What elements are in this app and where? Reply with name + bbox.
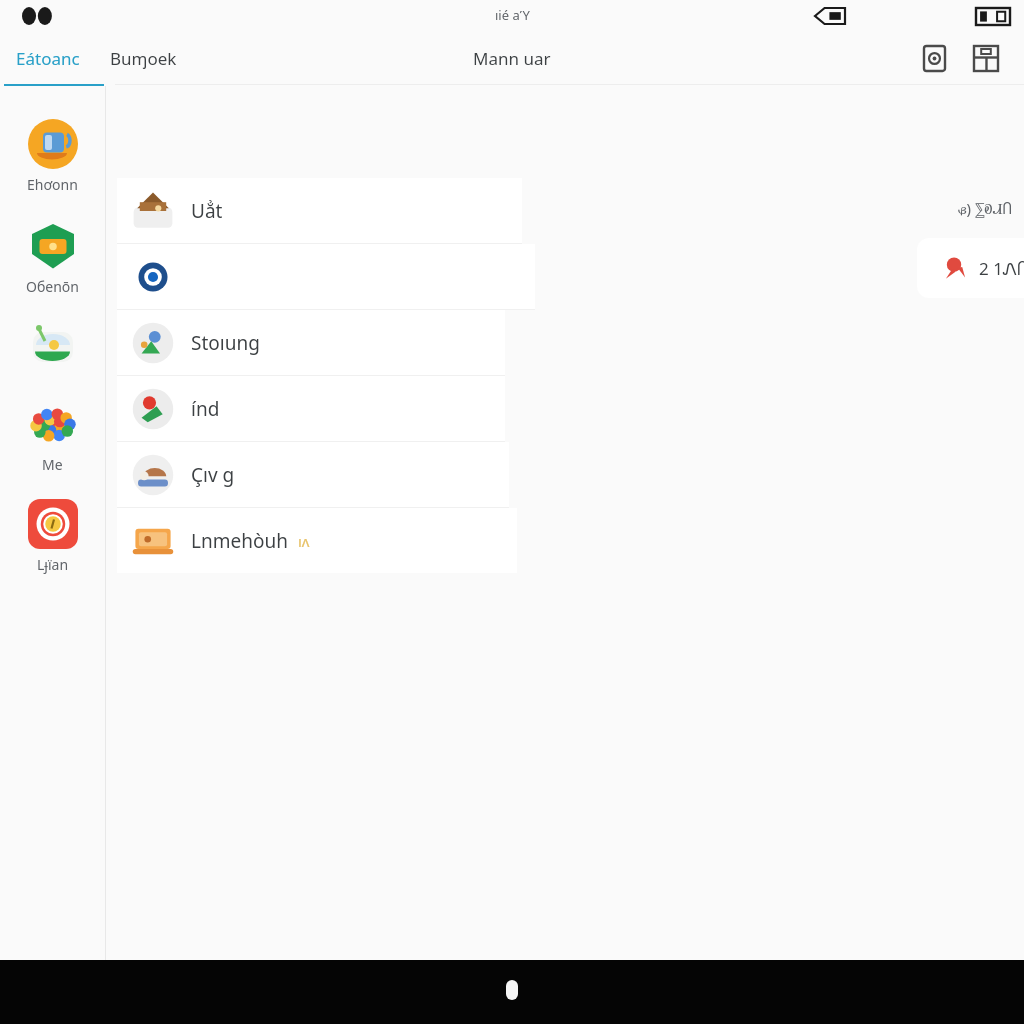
button[interactable]: Home xyxy=(506,980,518,1000)
button[interactable]: 2 1ᏁႶ xyxy=(917,238,1024,298)
button[interactable]: Oбenōn xyxy=(0,218,105,298)
button[interactable]: Uẳt xyxy=(117,178,522,243)
button[interactable] xyxy=(117,244,535,309)
staticText: Lɟïan xyxy=(37,555,69,574)
button[interactable] xyxy=(0,318,105,374)
button[interactable]: Buɱoek xyxy=(96,37,191,80)
button[interactable]: Çıv g xyxy=(117,442,509,507)
staticText: índ xyxy=(191,396,220,422)
staticText: Uẳt xyxy=(191,198,223,224)
staticText: Eátoanc xyxy=(16,47,80,70)
button[interactable]: Lɟïan xyxy=(0,496,105,576)
button[interactable]: Stoıung xyxy=(117,310,505,375)
staticText: Çıv g xyxy=(191,462,235,488)
button[interactable]: Me xyxy=(0,396,105,476)
button[interactable]: Ehơonn xyxy=(0,116,105,196)
staticText: ıʌ xyxy=(298,531,310,551)
staticText: Oбenōn xyxy=(26,277,79,296)
staticText: 2 1ᏁႶ xyxy=(979,257,1024,280)
button[interactable]: índ xyxy=(117,376,505,441)
staticText: Buɱoek xyxy=(110,47,177,70)
staticText: Me xyxy=(42,455,63,474)
staticText: Ehơonn xyxy=(27,175,78,194)
staticText: ᏸ) ⅀ᎧᏗႶ xyxy=(958,198,1013,218)
staticText: ıié aΎ xyxy=(495,6,530,24)
staticText: Mann uar xyxy=(473,47,551,70)
staticText: Lnmehòuh xyxy=(191,528,288,554)
staticText: Stoıung xyxy=(191,330,260,356)
button[interactable]: Eátoanc xyxy=(0,37,96,80)
button[interactable]: Capture xyxy=(908,32,960,84)
button[interactable]: Layout xyxy=(960,32,1012,84)
button[interactable]: Lnmehòuh xyxy=(117,508,517,573)
